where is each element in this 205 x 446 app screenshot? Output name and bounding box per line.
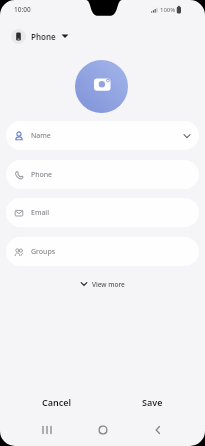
staticText: Email	[31, 208, 49, 218]
button[interactable]: Email	[6, 198, 199, 227]
staticText: Save	[142, 396, 163, 408]
button[interactable]: Cancel	[22, 393, 92, 411]
button[interactable]: View more	[0, 277, 205, 291]
button[interactable]	[75, 60, 128, 113]
staticText: 100%	[160, 6, 176, 14]
staticText: Phone	[31, 170, 53, 180]
button[interactable]: Name	[6, 121, 199, 150]
staticText: 10:00	[14, 5, 31, 14]
staticText: Cancel	[42, 396, 72, 408]
button[interactable]: Phone	[6, 160, 199, 189]
staticText: Groups	[31, 247, 56, 257]
button[interactable]	[143, 420, 173, 440]
staticText: Name	[31, 131, 51, 141]
button[interactable]: Groups	[6, 237, 199, 266]
staticText: View more	[92, 280, 125, 289]
button[interactable]	[32, 420, 62, 440]
staticText: Phone	[31, 31, 56, 42]
button[interactable]	[88, 420, 118, 440]
button[interactable]: Phone	[11, 28, 69, 44]
button[interactable]: Save	[117, 393, 187, 411]
